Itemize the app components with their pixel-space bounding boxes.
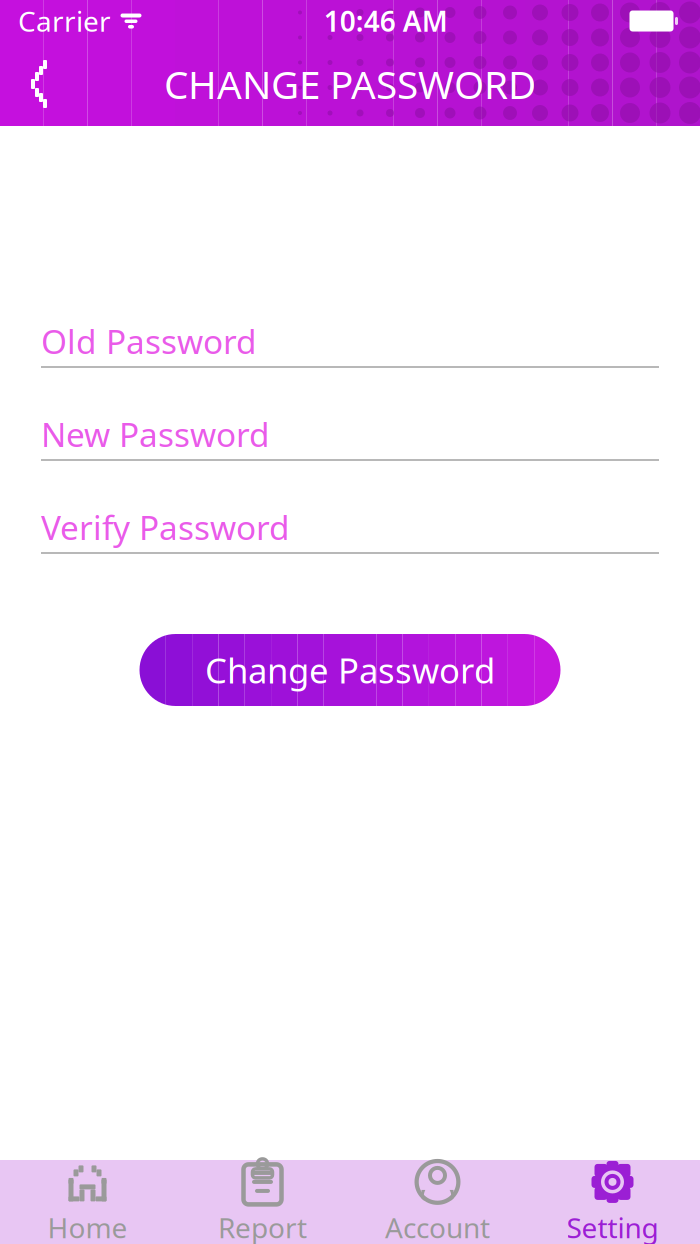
staticText: 10:46 AM <box>324 2 448 40</box>
button[interactable]: Account <box>350 1160 525 1244</box>
staticText: CHANGE PASSWORD <box>164 58 536 110</box>
button[interactable]: Verify Password <box>41 507 659 554</box>
staticText: Old Password <box>41 319 257 363</box>
staticText: Report <box>218 1209 307 1244</box>
staticText: New Password <box>41 412 270 456</box>
staticText: Carrier <box>18 2 111 40</box>
button[interactable]: New Password <box>41 414 659 461</box>
button[interactable]: Home <box>0 1160 175 1244</box>
button[interactable]: Old Password <box>41 321 659 368</box>
staticText: Account <box>385 1209 490 1244</box>
staticText: Change Password <box>205 647 495 693</box>
staticText: Home <box>47 1209 127 1244</box>
button[interactable]: Setting <box>525 1160 700 1244</box>
button[interactable]: Report <box>175 1160 350 1244</box>
button[interactable]: Change Password <box>139 634 560 706</box>
button[interactable]: Back <box>0 44 78 124</box>
staticText: Verify Password <box>41 505 290 549</box>
staticText: Setting <box>566 1209 658 1244</box>
